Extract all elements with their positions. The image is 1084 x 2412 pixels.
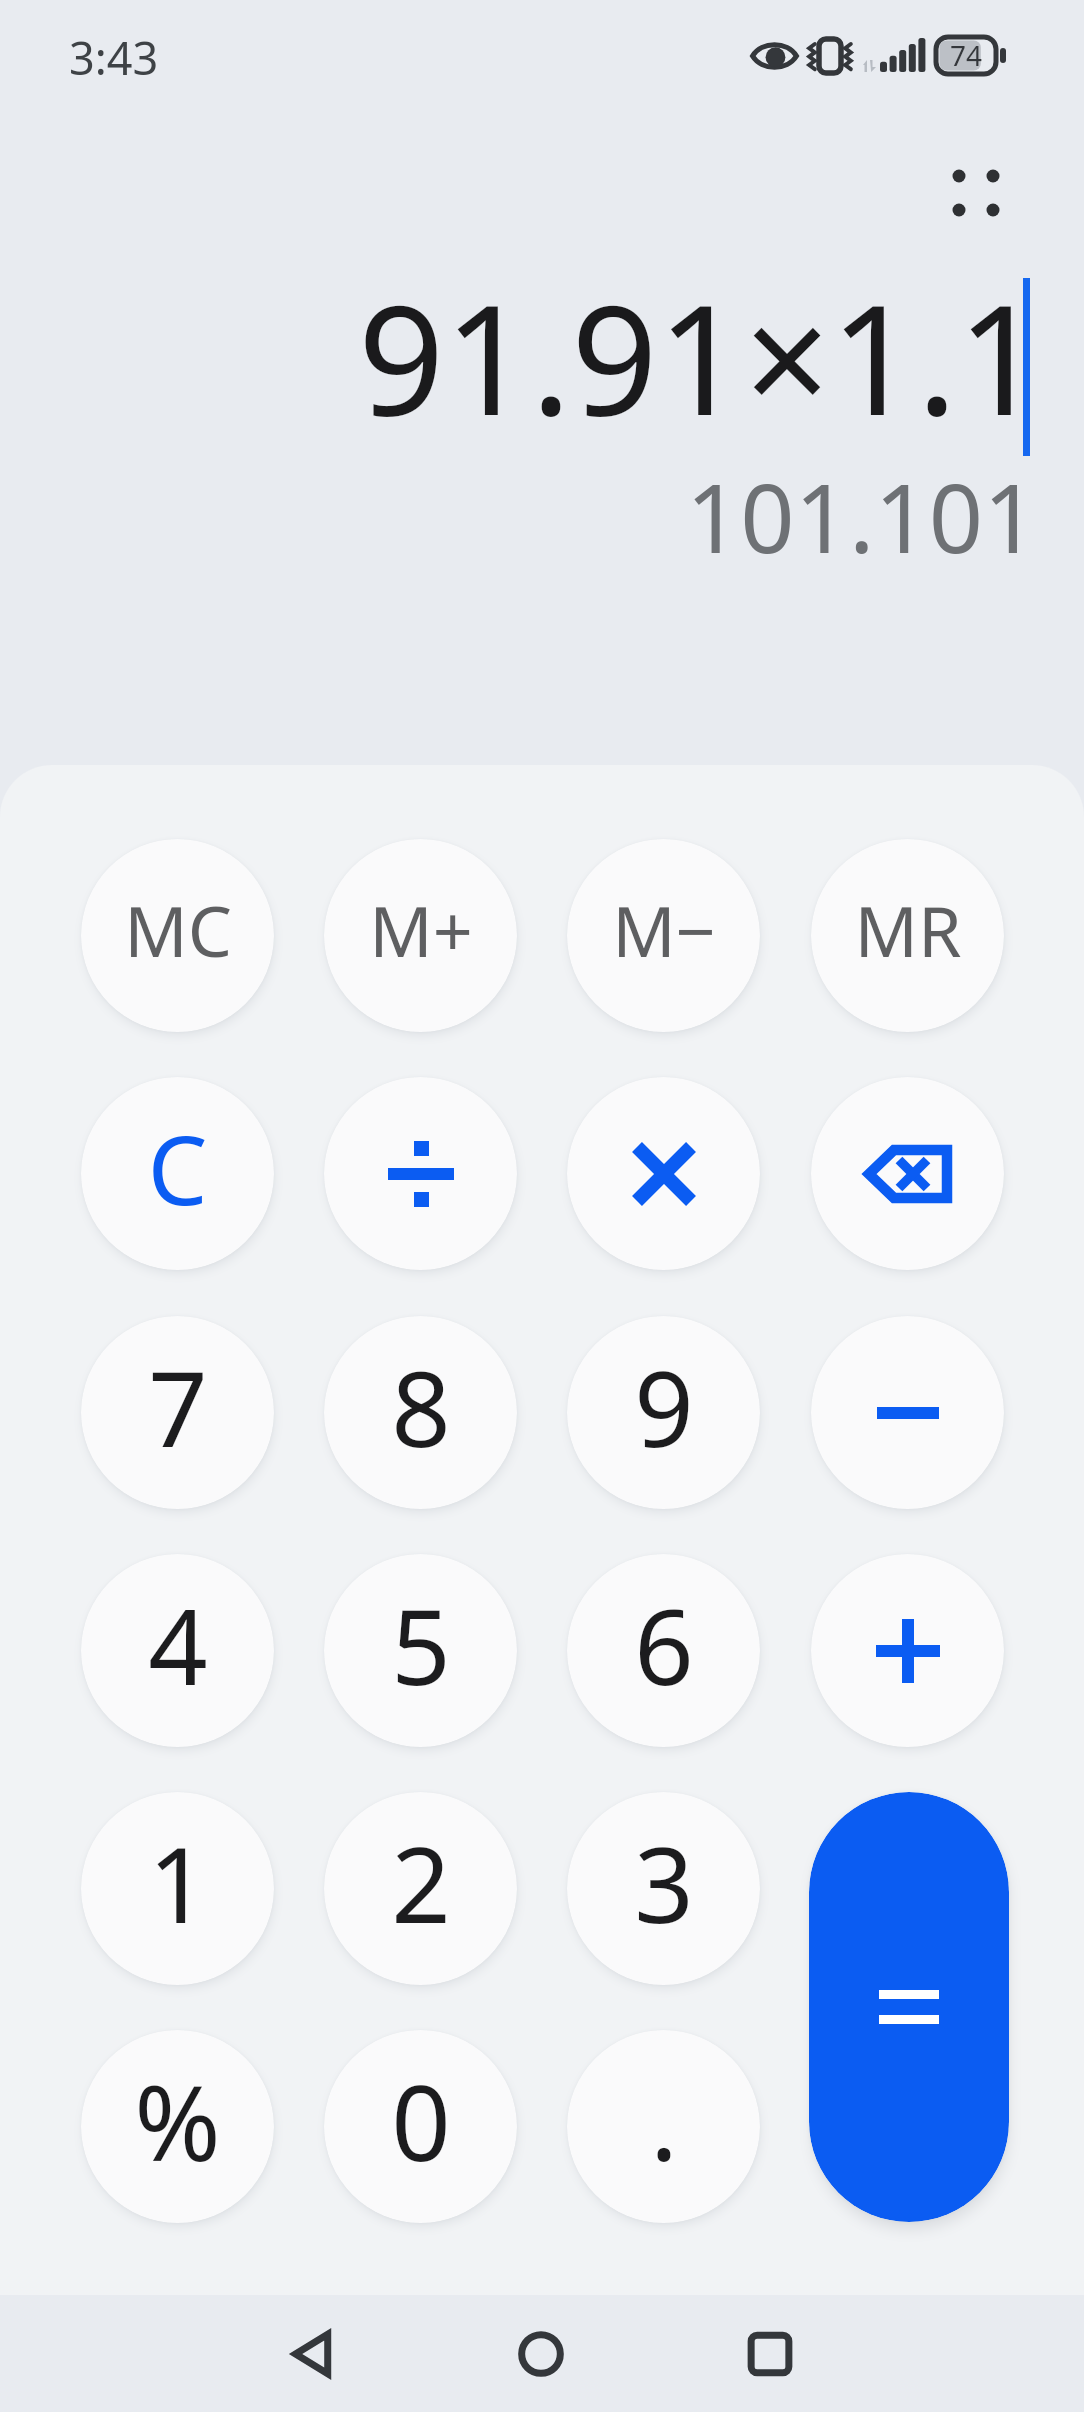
staticText: 91.91×1.1	[358, 254, 1044, 460]
staticText: 4	[148, 1574, 208, 1716]
staticText: C	[147, 1103, 208, 1232]
button[interactable]: Recents	[715, 2295, 825, 2412]
button[interactable]: 2	[324, 1792, 517, 1985]
button[interactable]: More options	[938, 155, 1014, 231]
button[interactable]: .	[567, 2030, 760, 2223]
staticText: %	[134, 2050, 221, 2192]
staticText: 5	[391, 1574, 451, 1716]
button[interactable]: Multiply	[567, 1077, 760, 1270]
staticText: MC	[124, 882, 232, 977]
button[interactable]: 0	[324, 2030, 517, 2223]
button[interactable]: 6	[567, 1554, 760, 1747]
staticText: 0	[391, 2050, 451, 2192]
button[interactable]: M−	[567, 839, 760, 1032]
button[interactable]: 9	[567, 1316, 760, 1509]
staticText: 3:43	[69, 27, 159, 88]
staticText: 74	[950, 36, 983, 73]
staticText: 101.101	[686, 451, 1038, 580]
button[interactable]: C	[81, 1077, 274, 1270]
staticText: M+	[369, 882, 473, 977]
button[interactable]: Back	[258, 2295, 368, 2412]
staticText: MR	[854, 882, 962, 977]
button[interactable]: 5	[324, 1554, 517, 1747]
staticText: 9	[634, 1336, 694, 1478]
staticText: 1	[148, 1812, 208, 1954]
button[interactable]: Home	[486, 2295, 596, 2412]
staticText: .	[650, 2050, 678, 2192]
button[interactable]: Divide	[324, 1077, 517, 1270]
button[interactable]: Plus	[811, 1554, 1004, 1747]
staticText: 2	[391, 1812, 451, 1954]
button[interactable]: %	[81, 2030, 274, 2223]
button[interactable]: 7	[81, 1316, 274, 1509]
staticText: 6	[634, 1574, 694, 1716]
button[interactable]: MC	[81, 839, 274, 1032]
staticText: M−	[612, 882, 716, 977]
staticText: 7	[148, 1336, 208, 1478]
button[interactable]: Equals	[809, 1792, 1009, 2222]
button[interactable]: 3	[567, 1792, 760, 1985]
button[interactable]: MR	[811, 839, 1004, 1032]
button[interactable]: 4	[81, 1554, 274, 1747]
button[interactable]: 1	[81, 1792, 274, 1985]
button[interactable]: M+	[324, 839, 517, 1032]
button[interactable]: Minus	[811, 1316, 1004, 1509]
button[interactable]: 8	[324, 1316, 517, 1509]
staticText: 3	[634, 1812, 694, 1954]
staticText: 8	[391, 1336, 451, 1478]
button[interactable]: Backspace	[811, 1077, 1004, 1270]
